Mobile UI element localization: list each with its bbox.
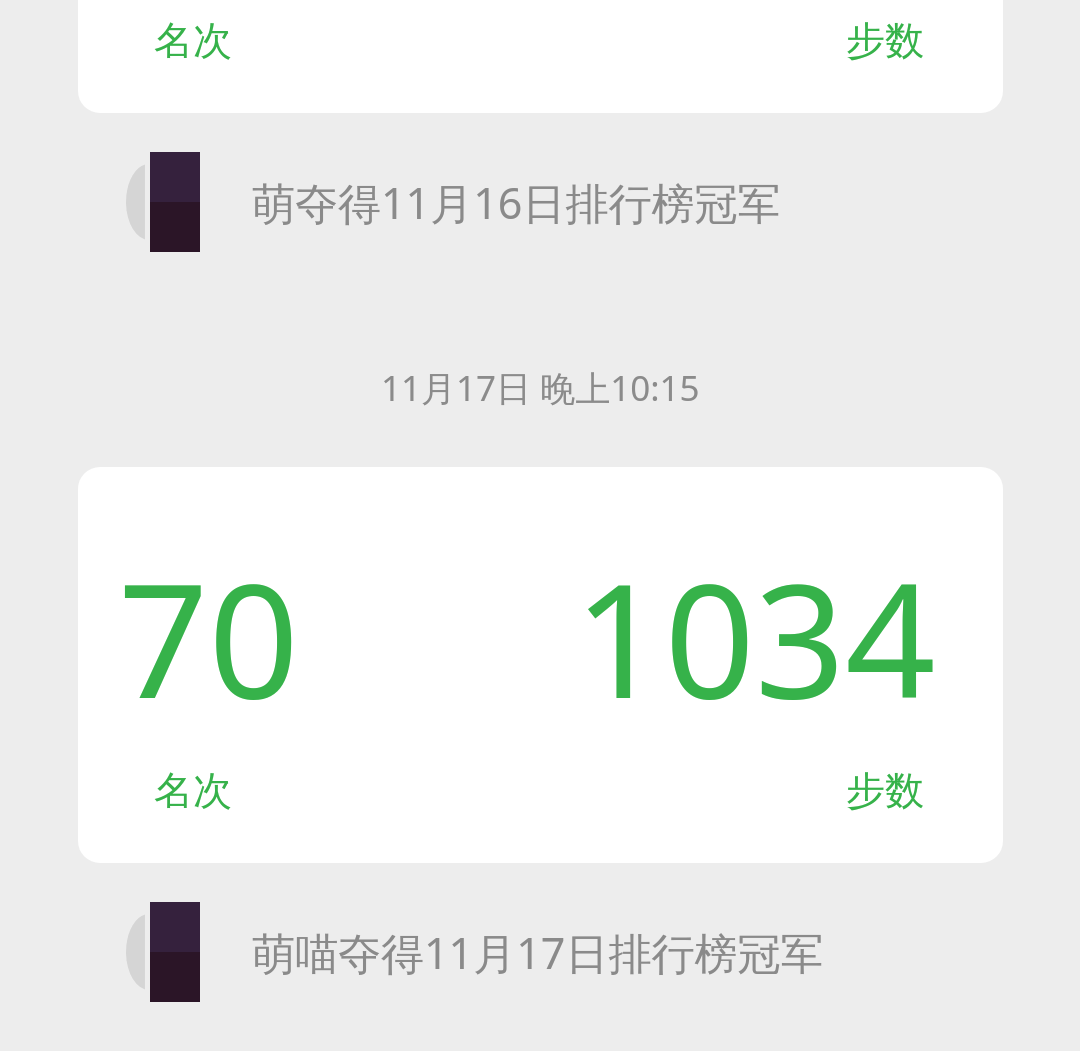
staticText: 名次 [154, 766, 232, 815]
button[interactable]: Avatar [0, 893, 1080, 1011]
button[interactable]: 70 [78, 467, 1003, 863]
staticText: 11月17日 晚上10:15 [381, 364, 700, 412]
staticText: 名次 [154, 16, 232, 65]
staticText: 步数 [846, 16, 924, 65]
staticText: 步数 [846, 766, 924, 815]
button[interactable]: Avatar [0, 143, 1080, 261]
other: Avatar [126, 902, 200, 1002]
staticText: 70 [118, 529, 299, 744]
other: Avatar [126, 152, 200, 252]
staticText: 1034 [574, 529, 936, 744]
staticText: 萌喵夺得11月17日排行榜冠军 [252, 923, 824, 982]
staticText: 萌夺得11月16日排行榜冠军 [252, 173, 781, 232]
button[interactable]: 70 [78, 0, 1003, 113]
